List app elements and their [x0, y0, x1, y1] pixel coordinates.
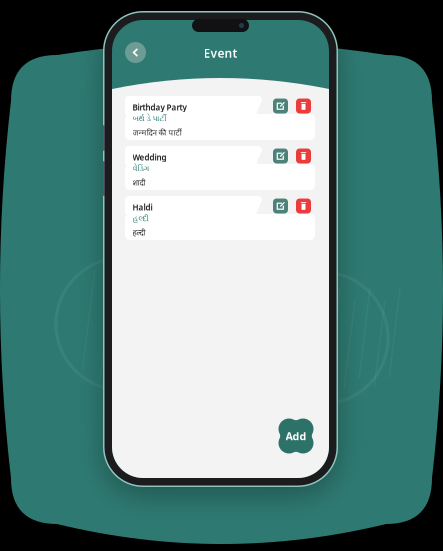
button[interactable]: Edit Birthday Party — [273, 98, 288, 113]
button[interactable]: Delete Haldi — [296, 198, 311, 213]
staticText: વેડિંગ — [132, 165, 149, 173]
staticText: બર્થ ડે પાર્ટી — [132, 115, 166, 123]
staticText: जन्मदिन की पार्टी — [132, 127, 181, 138]
button[interactable]: Delete Birthday Party — [296, 98, 311, 113]
button[interactable]: Edit Haldi — [273, 198, 288, 213]
staticText: હલ્દી — [132, 215, 148, 223]
button[interactable]: Back — [125, 42, 146, 63]
button[interactable]: Add — [278, 418, 313, 453]
staticText: Birthday Party — [132, 102, 186, 113]
staticText: Haldi — [132, 202, 152, 213]
staticText: हल्दी — [132, 227, 145, 238]
staticText: Add — [285, 429, 306, 443]
button[interactable]: Edit Wedding — [273, 148, 288, 163]
staticText: Event — [203, 45, 237, 61]
staticText: Wedding — [132, 152, 166, 163]
button[interactable]: Delete Wedding — [296, 148, 311, 163]
staticText: शादी — [132, 177, 145, 188]
